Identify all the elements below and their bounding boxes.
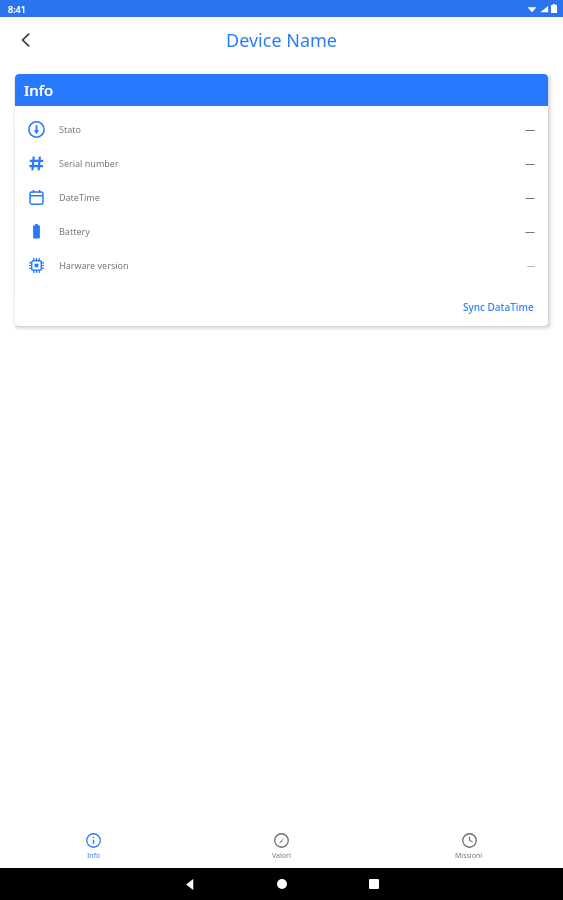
staticText: Sync DataTime bbox=[463, 300, 534, 314]
button[interactable]: Info bbox=[0, 826, 187, 868]
button[interactable]: Stato bbox=[15, 112, 548, 146]
staticText: — bbox=[525, 190, 535, 204]
staticText: — bbox=[525, 156, 535, 170]
staticText: Stato bbox=[59, 123, 81, 135]
staticText: Valori bbox=[272, 851, 291, 861]
staticText: Battery bbox=[59, 225, 90, 237]
staticText: — bbox=[525, 224, 535, 238]
button[interactable]: Battery bbox=[15, 214, 548, 248]
staticText: Info bbox=[24, 80, 54, 100]
staticText: Harware version bbox=[59, 259, 129, 271]
button[interactable]: DateTime bbox=[15, 180, 548, 214]
button[interactable]: Serial number bbox=[15, 146, 548, 180]
staticText: Serial number bbox=[59, 157, 119, 169]
button[interactable]: Harware version bbox=[15, 248, 548, 282]
button[interactable]: Missioni bbox=[375, 826, 563, 868]
button[interactable]: Valori bbox=[187, 826, 375, 868]
button[interactable]: Back bbox=[6, 20, 46, 60]
staticText: Device Name bbox=[226, 28, 337, 53]
staticText: Missioni bbox=[455, 851, 483, 861]
staticText: Info bbox=[87, 851, 101, 861]
staticText: — bbox=[525, 122, 535, 136]
staticText: 8:41 bbox=[8, 3, 26, 15]
button[interactable]: Sync DataTime bbox=[449, 296, 548, 318]
staticText: — bbox=[527, 260, 535, 271]
staticText: DateTime bbox=[59, 191, 100, 203]
